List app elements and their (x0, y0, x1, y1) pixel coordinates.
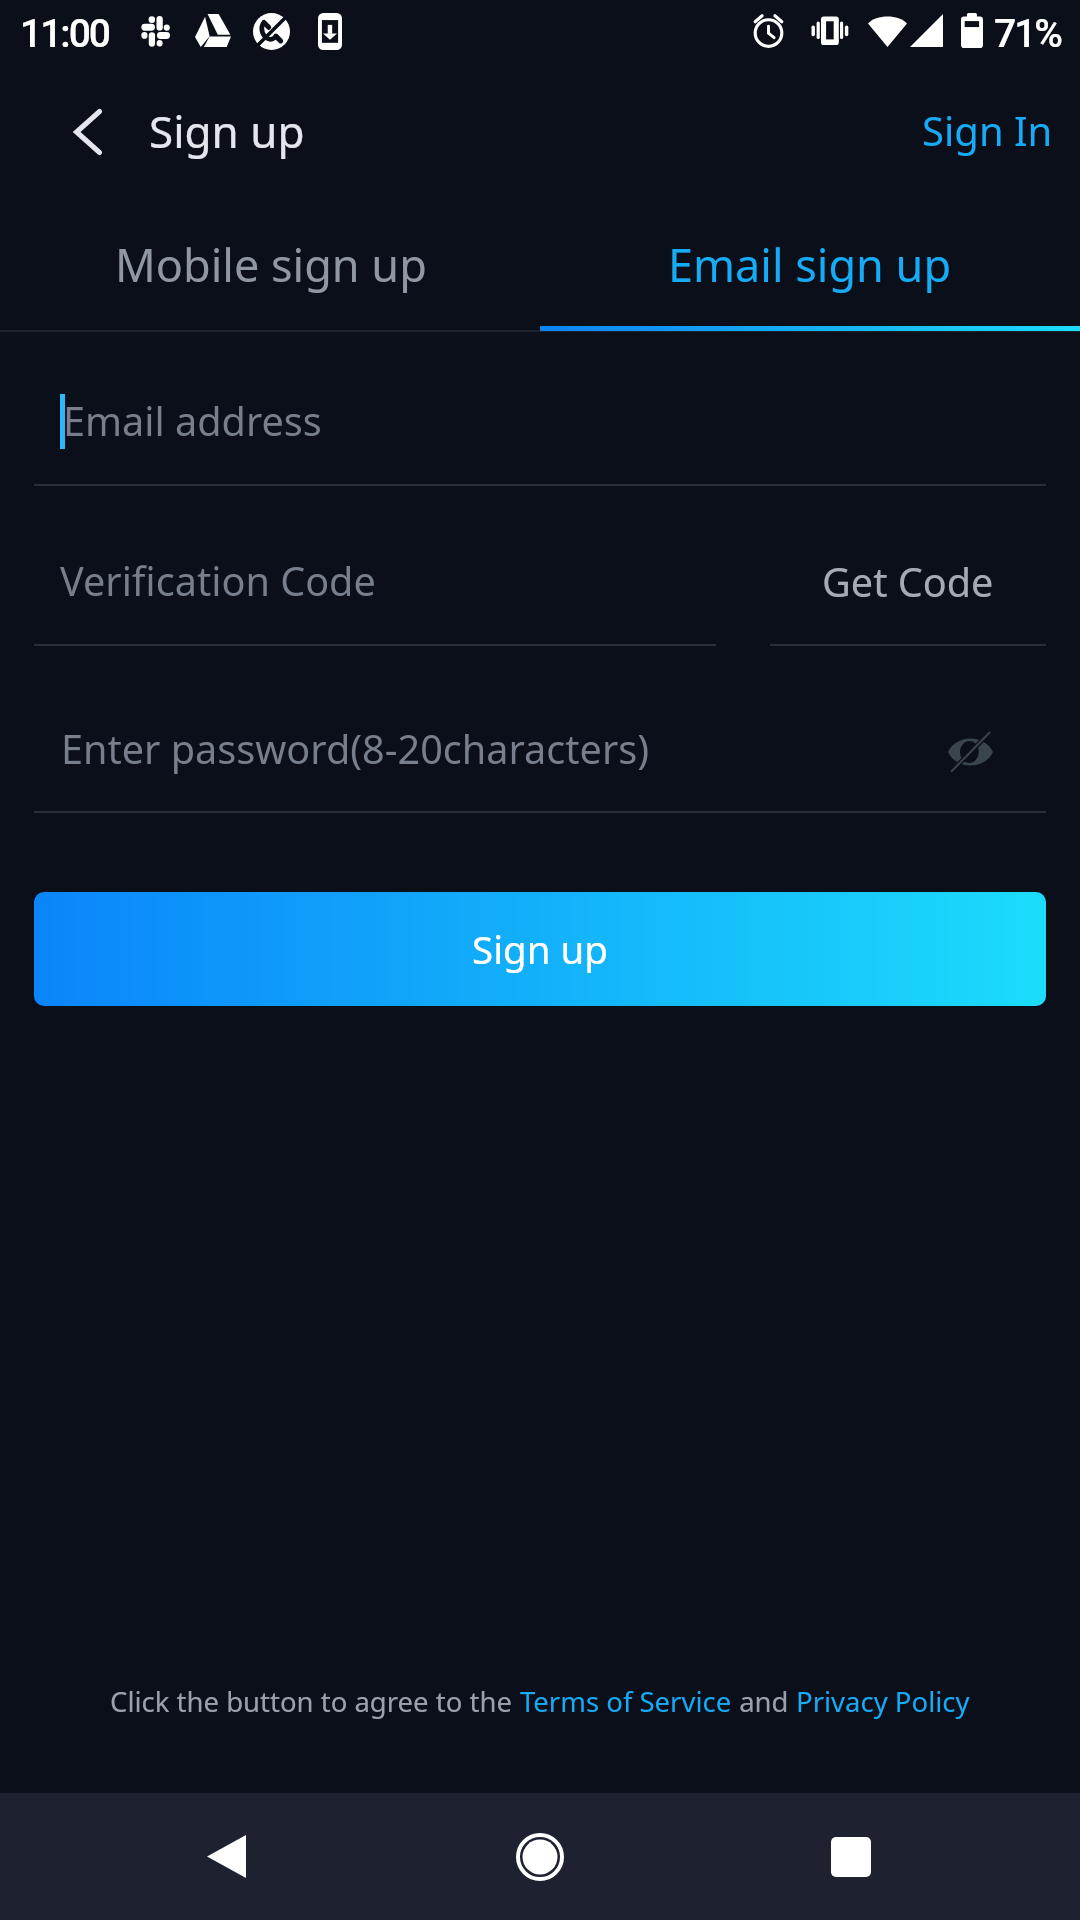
staticText: Verification Code (60, 554, 376, 608)
staticText: Sign In (922, 103, 1053, 157)
staticText: and (732, 1683, 796, 1720)
button[interactable]: Privacy Policy (796, 1683, 970, 1720)
staticText: Sign up (472, 923, 609, 975)
staticText: Mobile sign up (115, 234, 427, 295)
button[interactable]: Back (50, 87, 130, 177)
button[interactable]: Get Code (770, 529, 1046, 634)
button[interactable]: Home (480, 1793, 600, 1920)
button[interactable]: Email sign up (540, 209, 1080, 319)
staticText: 71% (994, 11, 1061, 57)
button[interactable]: Mobile sign up (1, 209, 541, 319)
button[interactable]: Terms of Service (520, 1683, 732, 1720)
staticText: Sign up (149, 101, 305, 161)
staticText: Privacy Policy (796, 1683, 970, 1720)
staticText: Enter password(8-20characters) (61, 722, 650, 776)
staticText: Email address (63, 394, 322, 448)
button[interactable]: Sign up (34, 892, 1046, 1006)
staticText: Email sign up (668, 234, 952, 295)
button[interactable]: Show password (930, 712, 1010, 792)
button[interactable]: Sign In (910, 85, 1064, 175)
button[interactable]: Back (166, 1793, 286, 1920)
button[interactable]: Recent apps (791, 1793, 911, 1920)
staticText: Terms of Service (520, 1683, 732, 1720)
staticText: Get Code (822, 555, 994, 609)
staticText: Click the button to agree to the (110, 1683, 520, 1720)
staticText: 11:00 (20, 11, 110, 57)
